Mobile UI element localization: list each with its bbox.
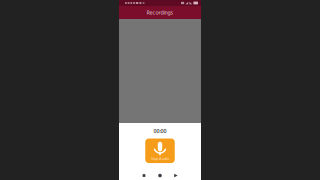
button[interactable]: Home	[152, 171, 168, 180]
staticText: Recordings	[146, 9, 173, 16]
button[interactable]: Stop Audio recording	[145, 138, 175, 163]
button[interactable]: Recents	[136, 171, 152, 180]
staticText: Stop Audio	[151, 156, 169, 161]
staticText: 00:00	[153, 127, 166, 135]
button[interactable]: Back	[168, 171, 184, 180]
